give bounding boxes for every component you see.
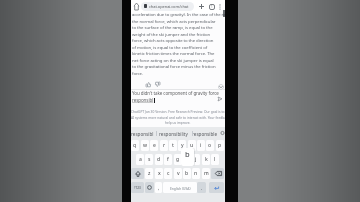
button[interactable]: u xyxy=(188,140,196,151)
staticText: c xyxy=(167,170,170,177)
staticText: net force acting on the ski jumper is eq… xyxy=(132,57,214,63)
staticText: t xyxy=(172,142,174,149)
button[interactable]: y xyxy=(178,140,186,151)
button[interactable] xyxy=(145,182,154,193)
button[interactable]: s xyxy=(145,154,153,165)
staticText: force. xyxy=(132,70,143,76)
button[interactable]: . xyxy=(197,182,206,193)
staticText: a xyxy=(139,156,142,163)
button[interactable]: , xyxy=(155,182,162,193)
staticText: chat.openai.com/chat xyxy=(149,4,189,9)
button[interactable] xyxy=(199,4,204,9)
button[interactable]: v xyxy=(174,168,182,179)
staticText: h xyxy=(185,156,189,163)
button[interactable] xyxy=(131,168,144,179)
staticText: y xyxy=(181,142,184,149)
staticText: 1 xyxy=(211,5,213,9)
staticText: j xyxy=(195,156,197,163)
staticText: v xyxy=(177,170,180,177)
button[interactable] xyxy=(220,130,225,136)
button[interactable] xyxy=(134,3,139,10)
staticText: AI systems more natural and safe to inte… xyxy=(131,116,225,120)
staticText: s xyxy=(148,156,151,163)
staticText: w xyxy=(143,142,148,149)
staticText: kinetic friction times the normal force.… xyxy=(132,50,215,56)
button[interactable]: g xyxy=(174,154,182,165)
staticText: help us improve. xyxy=(165,121,191,125)
button[interactable]: i xyxy=(197,140,205,151)
button[interactable] xyxy=(218,97,222,101)
button[interactable]: b xyxy=(183,168,191,179)
button[interactable]: a xyxy=(136,154,144,165)
staticText: ChatGPT Jan 30 Version. Free Research Pr… xyxy=(131,110,225,114)
staticText: . xyxy=(201,185,203,191)
staticText: r xyxy=(163,142,166,149)
staticText: f xyxy=(167,156,169,163)
button[interactable]: f xyxy=(164,154,172,165)
staticText: weight of the ski jumper and the frictio… xyxy=(132,31,211,37)
staticText: p xyxy=(218,142,222,149)
button[interactable]: t xyxy=(169,140,177,151)
button[interactable]: m xyxy=(202,168,210,179)
button[interactable]: x xyxy=(155,168,163,179)
button[interactable]: English (USA) xyxy=(163,182,197,193)
staticText: g xyxy=(176,156,180,163)
staticText: acceleration due to gravity). In the cas… xyxy=(132,11,225,17)
staticText: , xyxy=(158,185,160,191)
staticText: responsibl xyxy=(132,97,154,103)
button[interactable]: n xyxy=(192,168,200,179)
button[interactable]: ?123 xyxy=(131,182,144,193)
staticText: the normal force, which acts perpendicul… xyxy=(132,18,216,24)
staticText: force, which acts opposite to the direct… xyxy=(132,37,214,43)
staticText: b xyxy=(185,149,190,159)
staticText: d xyxy=(157,156,161,163)
button[interactable]: 1 xyxy=(209,4,215,10)
button[interactable]: l xyxy=(211,154,219,165)
button[interactable] xyxy=(141,2,194,11)
staticText: English (USA) xyxy=(170,186,191,190)
button[interactable]: j xyxy=(192,154,200,165)
staticText: m xyxy=(204,170,209,177)
staticText: z xyxy=(148,170,151,177)
button[interactable] xyxy=(211,168,224,179)
button[interactable] xyxy=(155,82,160,87)
button[interactable]: c xyxy=(164,168,172,179)
staticText: responsibl xyxy=(131,131,154,137)
staticText: n xyxy=(194,170,198,177)
staticText: b xyxy=(185,170,189,177)
staticText: to the surface of the ramp, is equal to … xyxy=(132,24,213,30)
button[interactable]: r xyxy=(160,140,168,151)
staticText: u xyxy=(190,142,194,149)
staticText: of motion, is equal to the coefficient o… xyxy=(132,44,208,50)
button[interactable]: p xyxy=(216,140,224,151)
button[interactable]: w xyxy=(141,140,149,151)
button[interactable]: e xyxy=(150,140,158,151)
button[interactable]: o xyxy=(206,140,214,151)
staticText: responsible xyxy=(192,131,218,137)
button[interactable]: h xyxy=(183,154,191,165)
staticText: o xyxy=(208,142,212,149)
staticText: l xyxy=(214,156,216,163)
staticText: x xyxy=(158,170,161,177)
staticText: i xyxy=(200,142,202,149)
staticText: to the gravitational force minus the fri… xyxy=(132,63,216,69)
button[interactable]: q xyxy=(131,140,139,151)
button[interactable] xyxy=(209,182,224,193)
button[interactable]: d xyxy=(155,154,163,165)
button[interactable]: k xyxy=(202,154,210,165)
button[interactable] xyxy=(218,84,224,90)
button[interactable] xyxy=(219,4,221,10)
staticText: You didn't take component of gravity for… xyxy=(132,90,219,96)
button[interactable] xyxy=(146,82,151,87)
staticText: e xyxy=(153,142,156,149)
staticText: responsibility xyxy=(159,131,188,137)
staticText: k xyxy=(205,156,208,163)
staticText: q xyxy=(133,142,137,149)
button[interactable]: z xyxy=(145,168,153,179)
staticText: ?123 xyxy=(134,186,141,190)
